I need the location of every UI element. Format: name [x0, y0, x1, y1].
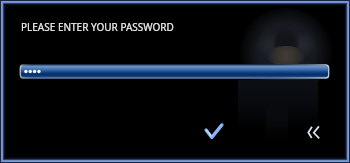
button[interactable]: Confirm password — [203, 121, 225, 143]
button[interactable] — [20, 64, 329, 79]
staticText: PLEASE ENTER YOUR PASSWORD — [21, 20, 174, 34]
button[interactable]: Back — [305, 124, 323, 142]
